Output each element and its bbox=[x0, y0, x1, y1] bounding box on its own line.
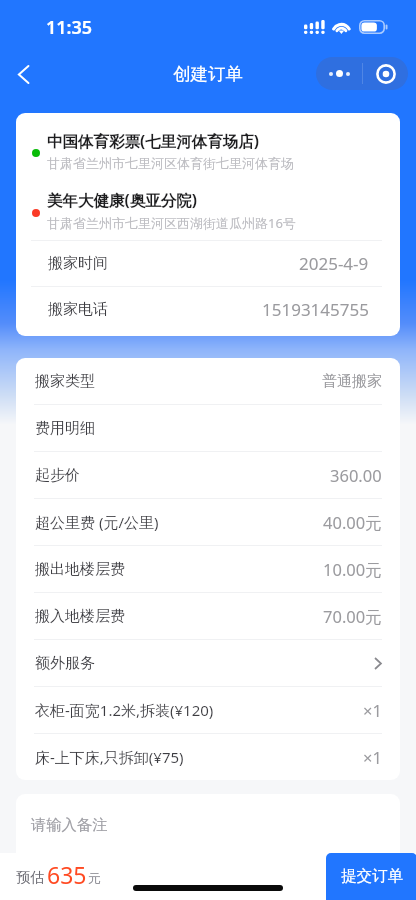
button[interactable]: 额外服务 bbox=[35, 640, 382, 686]
staticText: 635 bbox=[47, 859, 87, 890]
staticText: 甘肃省兰州市七里河区西湖街道瓜州路16号 bbox=[47, 214, 296, 232]
staticText: ×1 bbox=[363, 699, 382, 721]
staticText: 创建订单 bbox=[173, 63, 243, 85]
button[interactable]: 超公里费 (元/公里) bbox=[35, 499, 382, 545]
button[interactable]: 搬家类型 bbox=[35, 358, 382, 404]
button[interactable]: 美年大健康(奥亚分院) bbox=[16, 180, 400, 240]
button[interactable]: 搬出地楼层费 bbox=[35, 546, 382, 592]
staticText: ×1 bbox=[363, 746, 382, 768]
staticText: 床-上下床,只拆卸(¥75) bbox=[35, 747, 184, 767]
button[interactable]: 床-上下床,只拆卸(¥75) bbox=[35, 734, 382, 780]
staticText: 2025-4-9 bbox=[299, 252, 369, 275]
button[interactable]: Back bbox=[3, 54, 43, 94]
staticText: 超公里费 (元/公里) bbox=[35, 512, 159, 532]
staticText: 70.00元 bbox=[323, 605, 382, 628]
button[interactable]: 搬入地楼层费 bbox=[35, 593, 382, 639]
staticText: 普通搬家 bbox=[322, 372, 382, 391]
staticText: 搬入地楼层费 bbox=[35, 607, 125, 626]
button[interactable]: 搬家电话 bbox=[48, 287, 369, 332]
button[interactable]: 费用明细 bbox=[35, 405, 382, 451]
staticText: 搬家类型 bbox=[35, 372, 95, 391]
button[interactable]: 起步价 bbox=[35, 452, 382, 498]
staticText: 搬家电话 bbox=[48, 300, 108, 319]
staticText: 360.00 bbox=[330, 464, 382, 486]
button[interactable]: 提交订单 bbox=[326, 853, 416, 900]
button[interactable]: 搬家时间 bbox=[48, 241, 369, 286]
button[interactable]: 中国体育彩票(七里河体育场店) bbox=[16, 120, 400, 180]
staticText: 起步价 bbox=[35, 466, 80, 485]
staticText: 预估 bbox=[16, 869, 44, 887]
staticText: 美年大健康(奥亚分院) bbox=[47, 189, 198, 210]
staticText: 请输入备注 bbox=[31, 815, 108, 834]
staticText: 40.00元 bbox=[323, 511, 382, 534]
button[interactable]: 请输入备注 bbox=[16, 794, 400, 853]
button[interactable]: 衣柜-面宽1.2米,拆装(¥120) bbox=[35, 687, 382, 733]
staticText: 搬出地楼层费 bbox=[35, 560, 125, 579]
staticText: 提交订单 bbox=[341, 866, 403, 886]
staticText: 额外服务 bbox=[35, 654, 95, 673]
staticText: 搬家时间 bbox=[48, 254, 108, 273]
staticText: 费用明细 bbox=[35, 419, 95, 438]
staticText: 10.00元 bbox=[323, 558, 382, 581]
staticText: 11:35 bbox=[46, 15, 93, 40]
staticText: 15193145755 bbox=[262, 298, 369, 321]
button[interactable]: More options bbox=[316, 57, 408, 90]
staticText: 甘肃省兰州市七里河区体育街七里河体育场 bbox=[47, 155, 294, 171]
staticText: 衣柜-面宽1.2米,拆装(¥120) bbox=[35, 700, 214, 720]
staticText: 中国体育彩票(七里河体育场店) bbox=[47, 130, 260, 151]
staticText: 元 bbox=[88, 870, 101, 886]
